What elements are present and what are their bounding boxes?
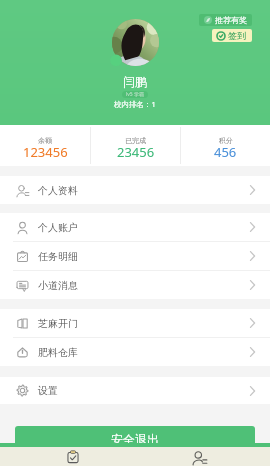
staticText: 任务明细 bbox=[38, 250, 78, 263]
staticText: 积分 bbox=[219, 136, 233, 145]
button[interactable]: 个人资料 bbox=[0, 176, 270, 204]
button[interactable]: 小道消息 bbox=[0, 271, 270, 299]
staticText: 校内排名：1 bbox=[114, 99, 156, 109]
staticText: 肥料仓库 bbox=[38, 346, 78, 359]
button[interactable]: 签到 bbox=[212, 29, 252, 42]
button[interactable]: 设置 bbox=[0, 377, 270, 404]
button[interactable]: 任务 bbox=[58, 447, 88, 466]
staticText: 设置 bbox=[38, 384, 58, 397]
staticText: 已完成 bbox=[125, 136, 146, 145]
button[interactable]: 已完成 bbox=[91, 128, 180, 163]
staticText: 推荐有奖 bbox=[215, 15, 247, 25]
button[interactable]: 我的 bbox=[184, 447, 214, 466]
button[interactable]: 余额 bbox=[0, 128, 90, 163]
button[interactable]: 头像 bbox=[112, 19, 159, 66]
button[interactable]: 芝麻开门 bbox=[0, 309, 270, 337]
staticText: 闫鹏 bbox=[123, 74, 147, 89]
button[interactable]: 积分 bbox=[181, 128, 270, 163]
staticText: 23456 bbox=[117, 143, 155, 161]
staticText: 芝麻开门 bbox=[38, 317, 78, 330]
button[interactable]: 推荐有奖 bbox=[199, 14, 252, 26]
staticText: 456 bbox=[214, 143, 237, 161]
staticText: 余额 bbox=[38, 136, 52, 145]
staticText: 签到 bbox=[228, 30, 246, 41]
button[interactable]: 任务明细 bbox=[0, 242, 270, 270]
staticText: 个人账户 bbox=[38, 221, 78, 234]
button[interactable]: 安全退出 bbox=[15, 426, 255, 456]
staticText: lv5 学霸 bbox=[126, 91, 144, 98]
staticText: 个人资料 bbox=[38, 184, 78, 197]
staticText: 安全退出 bbox=[111, 432, 159, 447]
staticText: 小道消息 bbox=[38, 279, 78, 292]
staticText: 123456 bbox=[23, 143, 68, 161]
button[interactable]: 个人账户 bbox=[0, 213, 270, 241]
button[interactable]: 肥料仓库 bbox=[0, 338, 270, 366]
